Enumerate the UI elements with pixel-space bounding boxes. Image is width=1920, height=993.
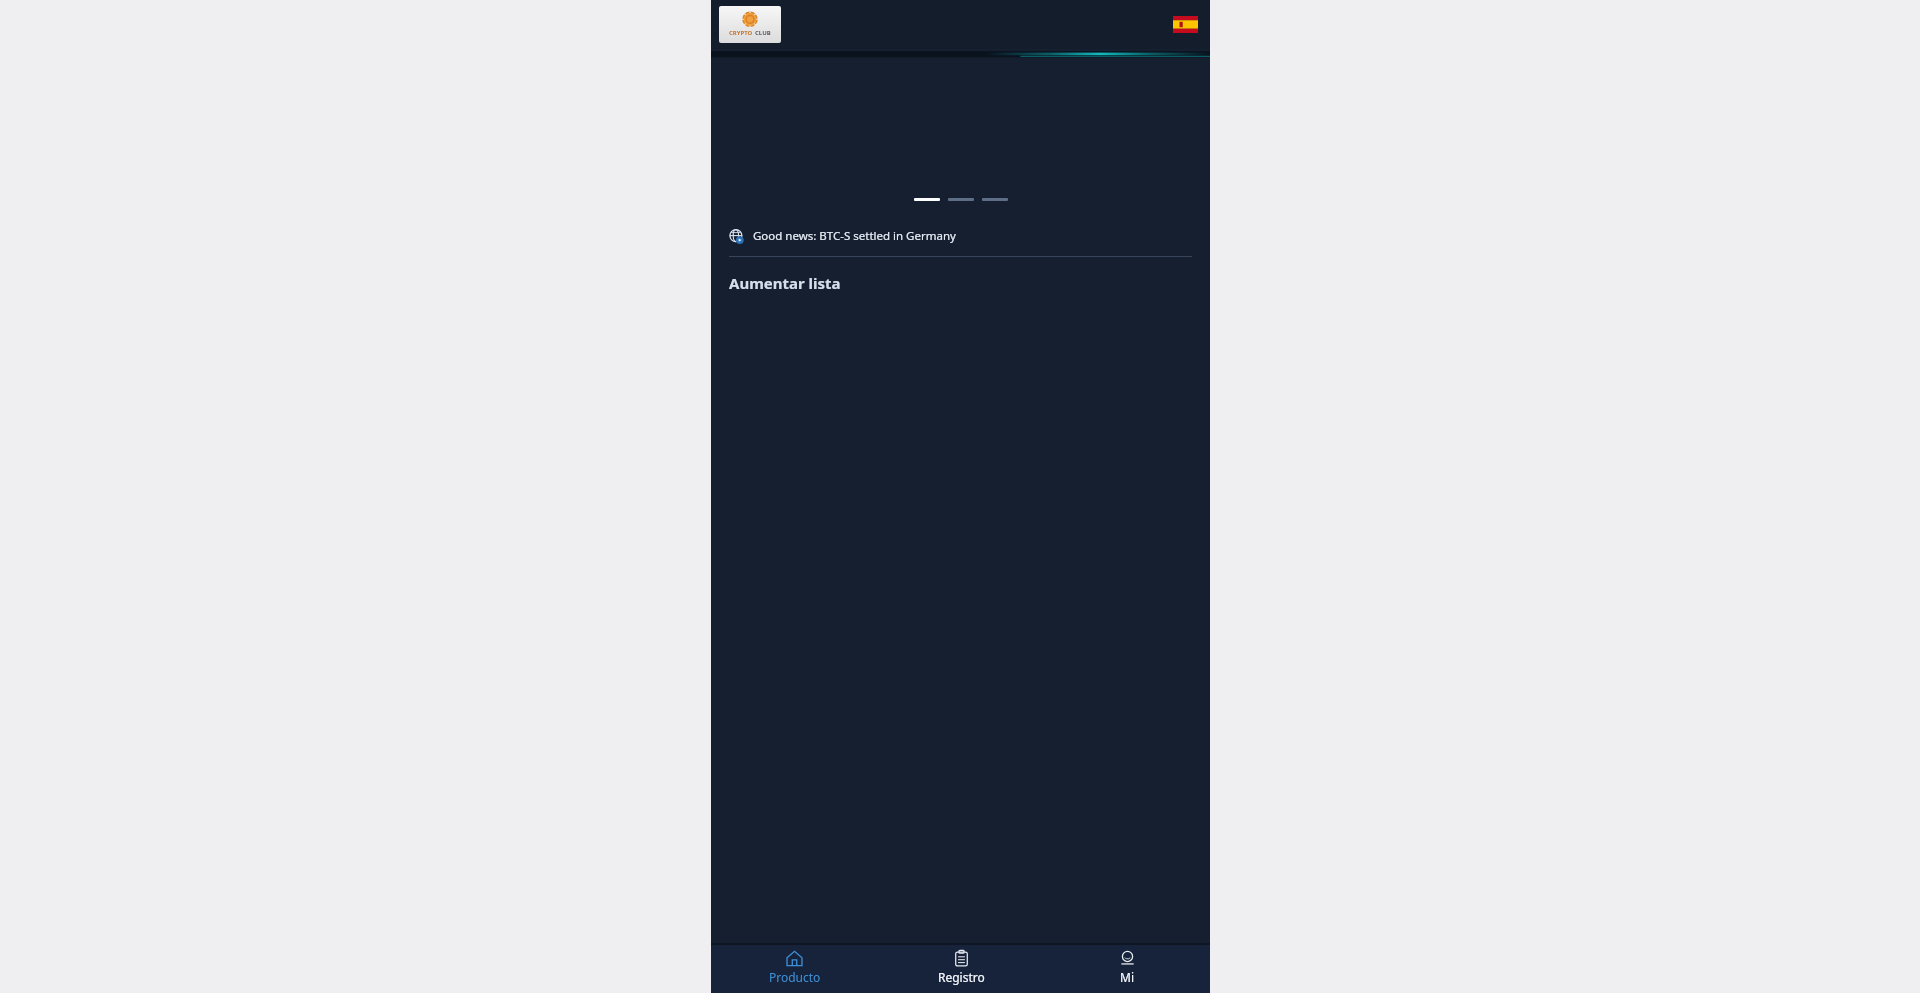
staticText: Producto (769, 969, 821, 985)
button[interactable]: Producto (711, 945, 878, 993)
staticText: Good news: BTC-S settled in Germany (753, 228, 956, 244)
staticText: Registro (938, 969, 985, 985)
button[interactable]: Good news: BTC-S settled in Germany (711, 216, 1210, 256)
staticText: CLUB (755, 29, 771, 37)
staticText: Mi (1120, 969, 1134, 985)
button[interactable]: Mi (1044, 945, 1210, 993)
button[interactable]: Change language (1173, 16, 1198, 33)
button[interactable]: Promotional banner (711, 49, 1210, 216)
staticText: CRYPTO (729, 29, 753, 37)
button[interactable]: Crypto Club home (719, 6, 781, 43)
staticText: Aumentar lista (729, 273, 841, 293)
button[interactable]: Registro (878, 945, 1044, 993)
